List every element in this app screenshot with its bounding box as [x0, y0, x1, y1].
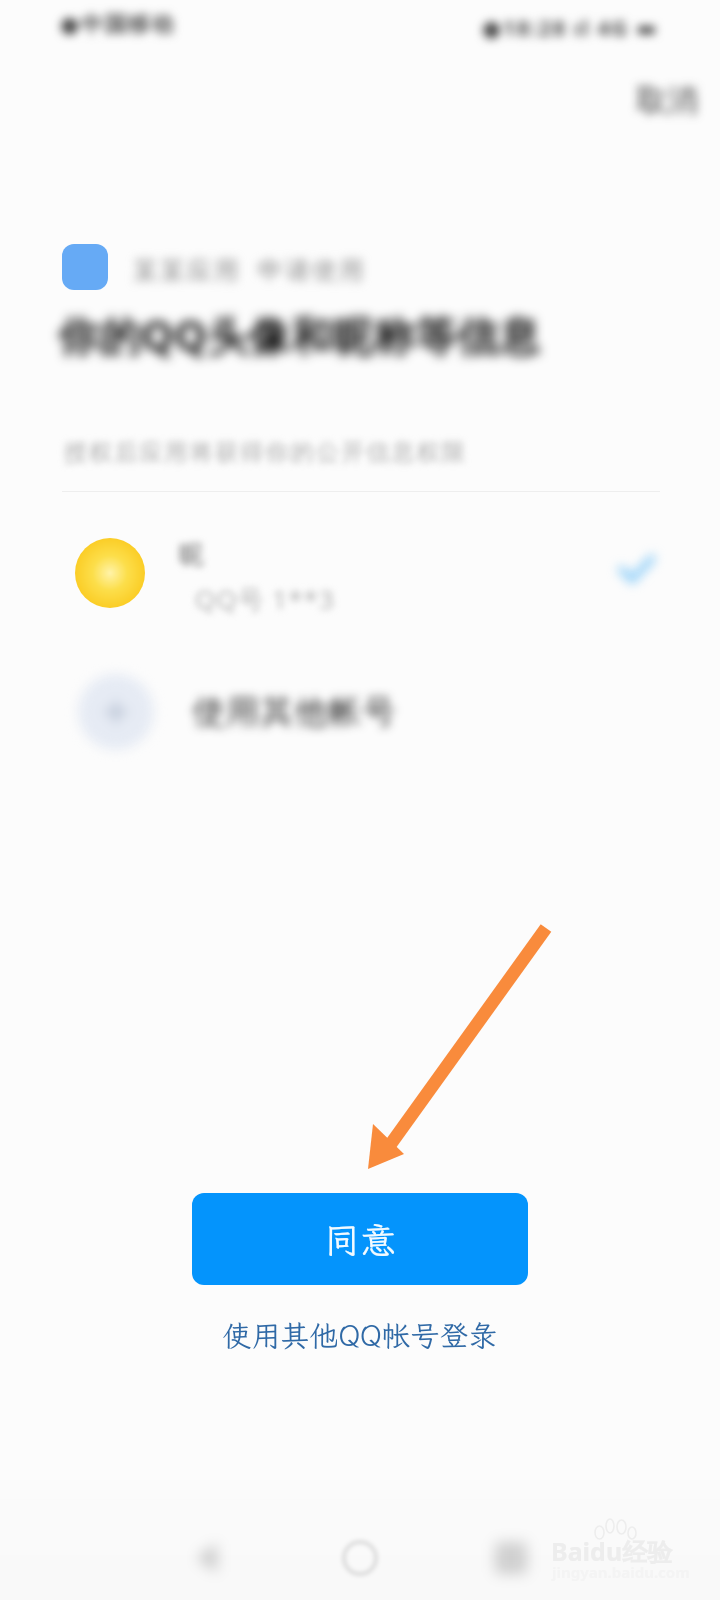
staticText: Baidu经验	[551, 1534, 673, 1568]
button[interactable]: Back	[155, 1518, 260, 1598]
staticText: 使用其他帐号	[192, 691, 396, 733]
button[interactable]: 取消	[619, 67, 715, 133]
staticText: ●中国移动	[60, 11, 175, 39]
button[interactable]: Home	[307, 1518, 412, 1598]
other: Selected	[617, 550, 655, 588]
staticText: 同意	[324, 1216, 397, 1263]
button[interactable]: 使用其他QQ帐号登录	[0, 1300, 720, 1370]
staticText: 使用其他QQ帐号登录	[222, 1316, 498, 1354]
staticText: 昵	[179, 539, 204, 570]
button[interactable]: Recent apps	[458, 1518, 563, 1598]
staticText: 授权后应用将获得你的公开信息权限	[64, 438, 468, 467]
staticText: 某某应用 申请使用	[133, 252, 367, 286]
button[interactable]: 使用其他帐号	[0, 654, 720, 770]
staticText: 取消	[636, 81, 698, 120]
staticText: 你的QQ头像和昵称等信息	[58, 307, 541, 363]
staticText: QQ号 1**3	[195, 581, 335, 617]
button[interactable]: 同意	[192, 1193, 528, 1285]
button[interactable]: 昵	[0, 514, 720, 632]
staticText: ●18:28 ıl 4G ▬	[482, 12, 659, 42]
